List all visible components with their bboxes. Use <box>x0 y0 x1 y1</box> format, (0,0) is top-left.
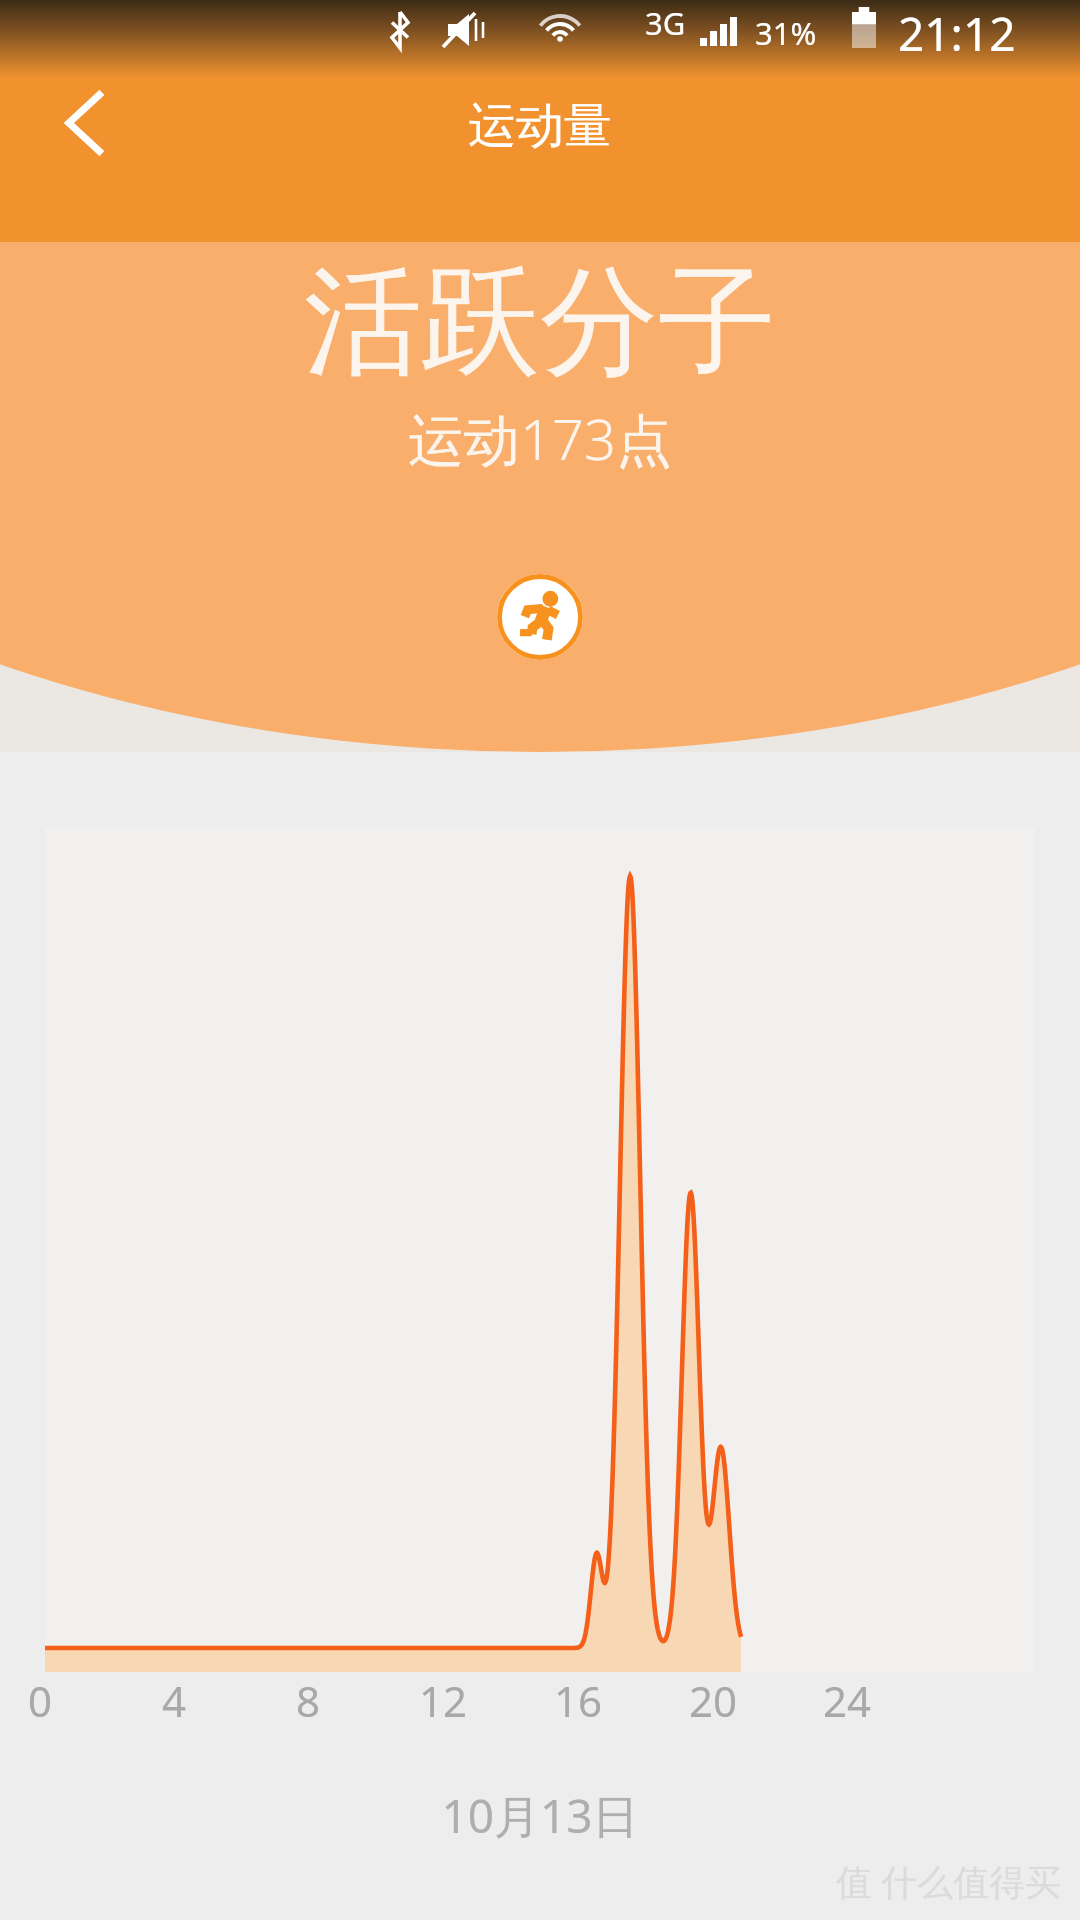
staticText: 24 <box>823 1672 872 1729</box>
staticText: 4 <box>162 1672 187 1729</box>
staticText: 运动173点 <box>0 400 1080 476</box>
staticText: 活跃分子 <box>0 248 1080 397</box>
staticText: 0 <box>28 1672 53 1729</box>
staticText: 31% <box>755 12 817 54</box>
staticText: 运动量 <box>0 96 1080 156</box>
staticText: 8 <box>296 1672 321 1729</box>
staticText: 3G <box>645 2 686 44</box>
button[interactable]: Back <box>34 76 126 170</box>
staticText: 21:12 <box>898 2 1016 65</box>
staticText: 20 <box>689 1672 738 1729</box>
staticText: 值 什么值得买 <box>836 1857 1062 1906</box>
staticText: 12 <box>419 1672 468 1729</box>
staticText: 16 <box>554 1672 603 1729</box>
staticText: 10月13日 <box>0 1784 1080 1847</box>
